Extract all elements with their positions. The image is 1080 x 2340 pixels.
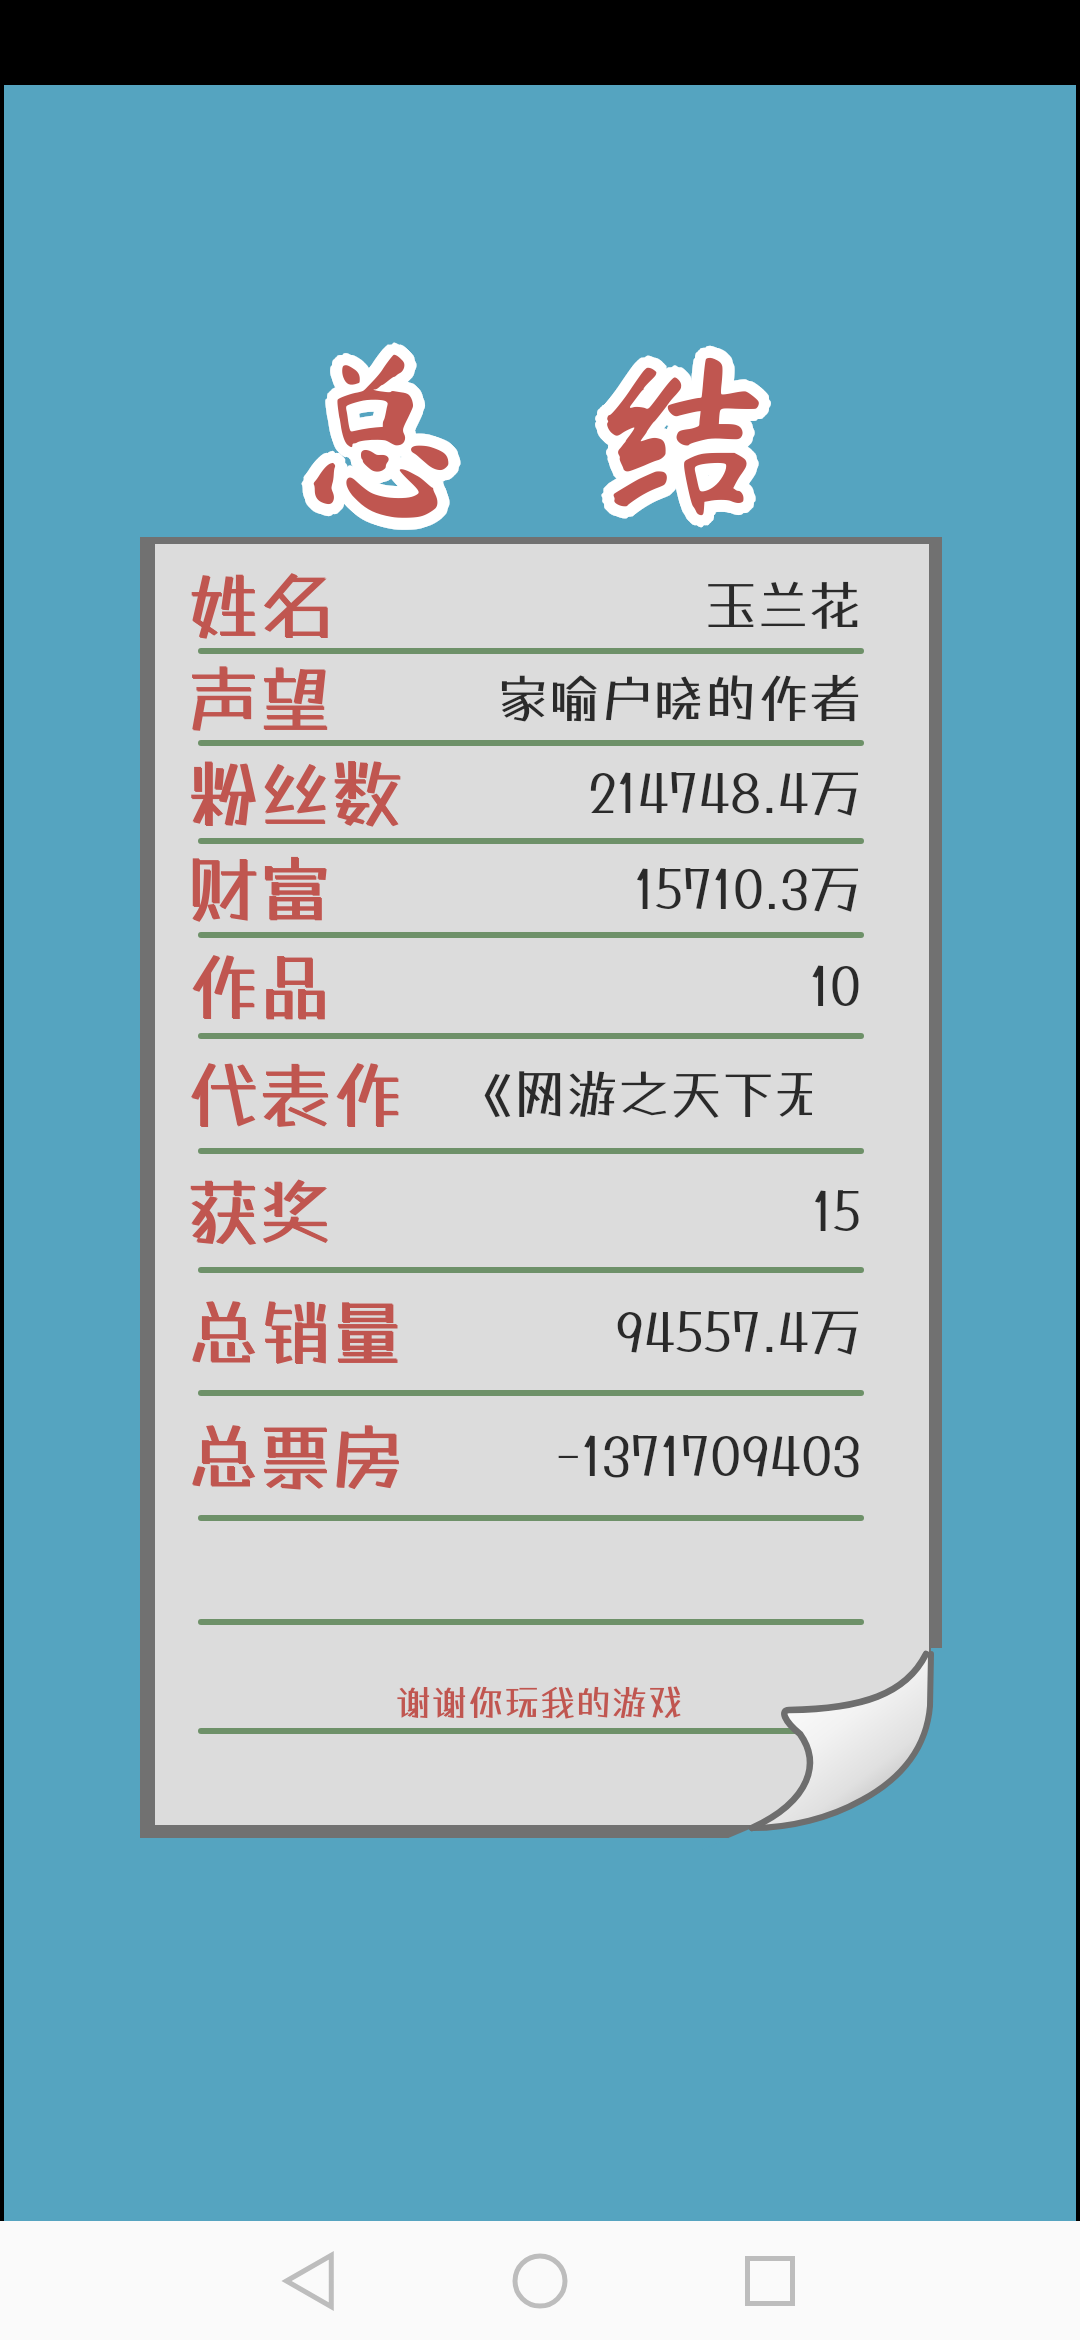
staticText: 总 <box>283 342 464 522</box>
staticText: 姓名 <box>188 563 333 648</box>
staticText: 总 <box>285 352 466 532</box>
staticText: 结 <box>599 342 780 522</box>
staticText: 总 <box>297 338 478 518</box>
staticText: 总 <box>301 348 482 528</box>
staticText: 总 <box>293 348 474 528</box>
staticText: 总 <box>299 348 480 528</box>
staticText: 总 <box>297 350 478 530</box>
staticText: 总 <box>287 338 468 518</box>
staticText: 结 <box>599 352 780 532</box>
button[interactable]: 财富 <box>140 841 942 935</box>
staticText: 结 <box>587 344 768 524</box>
staticText: 结 <box>603 342 784 522</box>
staticText: 总 <box>285 340 466 520</box>
staticText: 总 <box>287 346 468 526</box>
staticText: 获奖 <box>187 1168 332 1253</box>
staticText: 结 <box>601 336 782 516</box>
staticText: 总 <box>293 344 474 524</box>
staticText: 总 <box>283 350 464 530</box>
button[interactable]: 谢谢你玩我的游戏 <box>377 1681 702 1735</box>
staticText: 谢谢你玩我的游戏 <box>377 1681 702 1723</box>
staticText: 作品 <box>188 944 333 1029</box>
staticText: 总 <box>297 348 478 528</box>
button[interactable]: Home <box>480 2221 600 2340</box>
staticText: 结 <box>585 342 766 522</box>
button[interactable]: Recent apps <box>710 2221 830 2340</box>
staticText: 总 <box>287 344 468 524</box>
staticText: 结 <box>591 342 772 522</box>
button[interactable]: 总结 <box>280 330 800 535</box>
staticText: 结 <box>581 342 762 522</box>
staticText: 结 <box>601 340 782 520</box>
staticText: 总 <box>291 346 472 526</box>
staticText: 总 <box>283 336 464 516</box>
staticText: 结 <box>587 332 768 512</box>
staticText: 总 <box>281 336 462 516</box>
staticText: 总 <box>297 352 478 532</box>
staticText: 总 <box>289 332 470 512</box>
button[interactable]: Back <box>250 2221 370 2340</box>
staticText: 总 <box>283 334 464 514</box>
staticText: 结 <box>597 352 778 532</box>
staticText: 总 <box>289 334 470 514</box>
staticText: 总 <box>299 346 480 526</box>
staticText: 代表作 <box>188 1052 405 1137</box>
staticText: 结 <box>589 346 770 526</box>
staticText: 总 <box>297 334 478 514</box>
button[interactable]: 获奖 <box>140 1151 942 1270</box>
staticText: 总 <box>293 346 474 526</box>
staticText: 总 <box>295 336 476 516</box>
staticText: 总 <box>287 340 468 520</box>
staticText: 结 <box>595 352 776 532</box>
staticText: 结 <box>599 346 780 526</box>
button[interactable]: 声望 <box>140 651 942 743</box>
button[interactable]: 总销量 <box>140 1270 942 1393</box>
staticText: 结 <box>595 334 776 514</box>
staticText: 结 <box>595 350 776 530</box>
staticText: 结 <box>599 334 780 514</box>
staticText: 结 <box>587 338 768 518</box>
staticText: 结 <box>587 350 768 530</box>
staticText: 总 <box>285 338 466 518</box>
staticText: 结 <box>603 340 784 520</box>
staticText: 结 <box>599 332 780 512</box>
staticText: 10 <box>422 955 861 1016</box>
staticText: 结 <box>593 340 774 520</box>
staticText: 结 <box>601 344 782 524</box>
staticText: 作品 <box>187 943 332 1028</box>
staticText: 15 <box>422 1180 861 1241</box>
staticText: 结 <box>583 348 764 528</box>
staticText: 结 <box>585 350 766 530</box>
staticText: 总 <box>291 336 472 516</box>
button[interactable]: 总票房 <box>140 1393 942 1518</box>
button[interactable]: 粉丝数 <box>140 743 942 841</box>
staticText: 结 <box>599 340 780 520</box>
staticText: 结 <box>589 338 770 518</box>
staticText: 15710.3万 <box>422 858 861 919</box>
staticText: 结 <box>597 338 778 518</box>
staticText: 财富 <box>187 846 332 931</box>
staticText: 总 <box>285 336 466 516</box>
button[interactable]: 代表作 <box>140 1036 942 1151</box>
staticText: 总 <box>293 336 474 516</box>
staticText: 总票房 <box>188 1414 405 1499</box>
staticText: 总 <box>301 344 482 524</box>
staticText: 结 <box>601 342 782 522</box>
staticText: 总 <box>281 344 462 524</box>
staticText: 结 <box>603 336 784 516</box>
staticText: 结 <box>589 348 770 528</box>
staticText: 结 <box>595 336 776 516</box>
staticText: 结 <box>589 332 770 512</box>
staticText: 总 <box>287 334 468 514</box>
staticText: 总 <box>295 334 476 514</box>
staticText: 结 <box>591 348 772 528</box>
staticText: 结 <box>601 334 782 514</box>
staticText: 总 <box>291 350 472 530</box>
staticText: 结 <box>599 344 780 524</box>
button[interactable]: 作品 <box>140 935 942 1036</box>
button[interactable]: 姓名 <box>140 557 942 651</box>
staticText: -1371709403 <box>422 1425 861 1486</box>
staticText: 总 <box>295 340 476 520</box>
staticText: 结 <box>593 342 774 522</box>
staticText: 总 <box>279 342 460 522</box>
